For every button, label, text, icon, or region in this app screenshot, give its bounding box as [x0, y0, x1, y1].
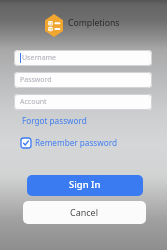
button[interactable]: Password	[14, 72, 152, 88]
staticText: Password	[20, 75, 52, 85]
staticText: Cancel	[70, 206, 99, 218]
staticText: Account	[20, 97, 47, 107]
staticText: Sign In	[69, 178, 101, 191]
staticText: Remember password	[35, 137, 117, 148]
button[interactable]: Account	[14, 94, 152, 110]
staticText: Completions	[68, 17, 120, 29]
button[interactable]: Remember password	[21, 137, 117, 148]
staticText: Username	[22, 53, 57, 63]
button[interactable]: Username	[14, 50, 152, 66]
button[interactable]: Forgot password	[22, 115, 87, 126]
button[interactable]: Cancel	[23, 201, 146, 224]
button[interactable]: Sign In	[27, 175, 143, 196]
